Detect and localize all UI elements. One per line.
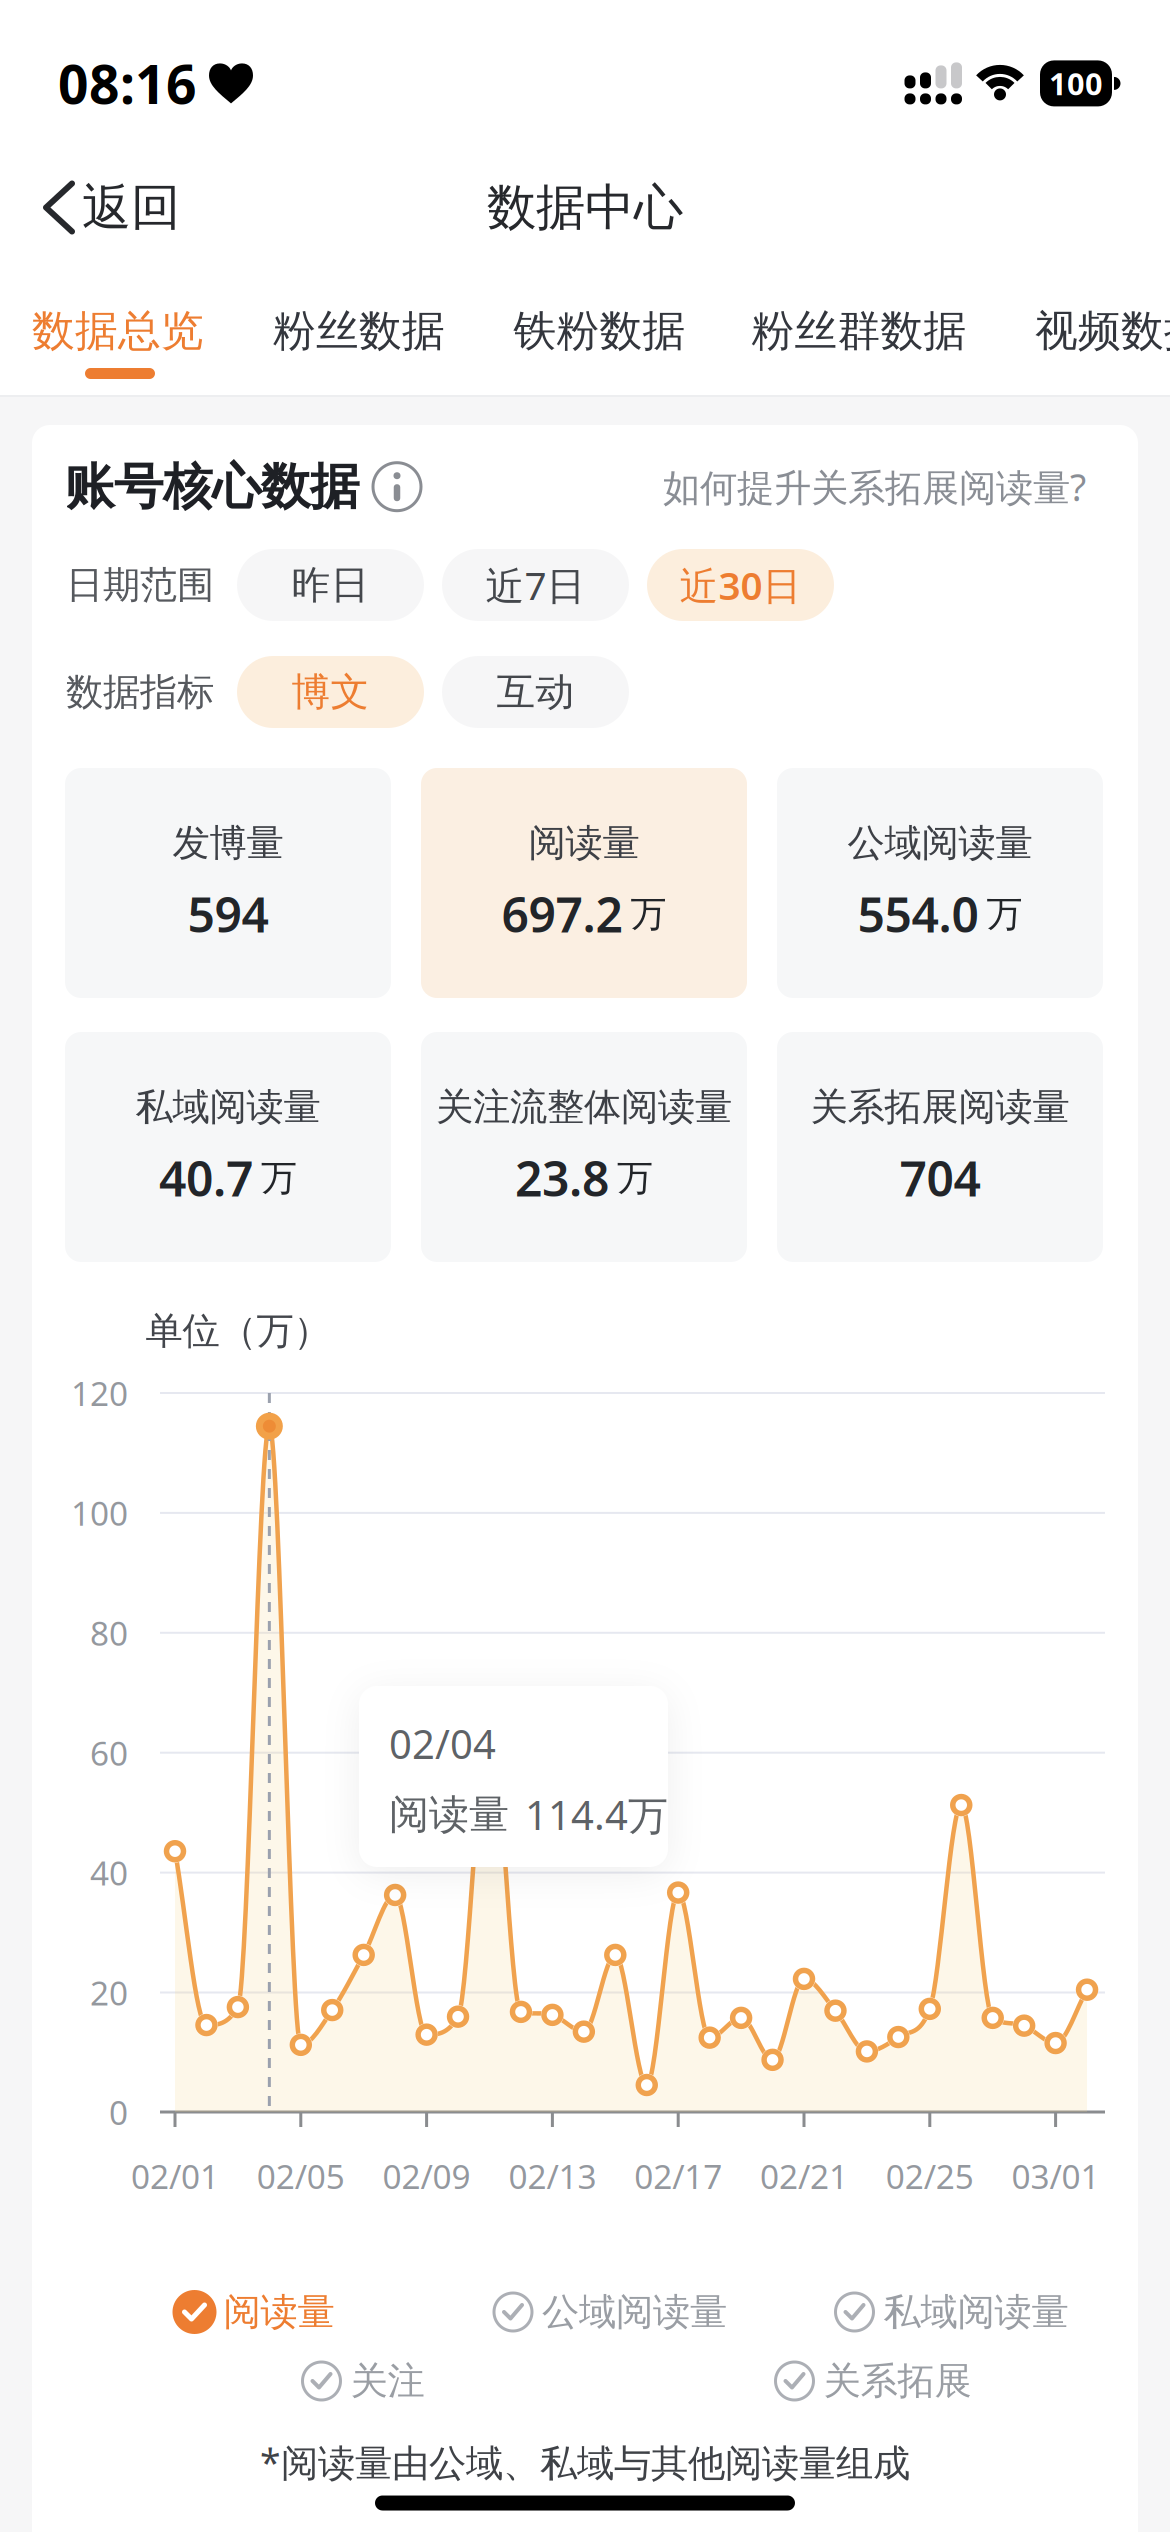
button[interactable]: 近7日 — [442, 549, 629, 621]
button[interactable]: 阅读量 — [172, 2289, 334, 2335]
staticText: 博文 — [291, 668, 369, 716]
button[interactable]: 返回 — [42, 177, 180, 238]
staticText: 40 — [90, 1850, 128, 1895]
staticText: 114.4万 — [525, 1788, 668, 1841]
staticText: 昨日 — [291, 561, 369, 609]
staticText: 数据指标 — [66, 669, 214, 715]
staticText: 公域阅读量 — [542, 2289, 727, 2335]
staticText: 发博量 — [172, 820, 283, 866]
staticText: 数据中心 — [487, 177, 683, 238]
button[interactable]: 公域阅读量 — [777, 768, 1103, 998]
staticText: 0 — [109, 2090, 128, 2134]
staticText: 594 — [187, 882, 268, 946]
staticText: 万 — [617, 1156, 653, 1200]
staticText: 100 — [1049, 63, 1103, 104]
button[interactable]: 博文 — [237, 656, 424, 728]
button[interactable]: 如何提升关系拓展阅读量? — [663, 462, 1086, 511]
staticText: 近30日 — [679, 559, 801, 611]
button[interactable]: 私域阅读量 — [65, 1032, 391, 1262]
staticText: 02/21 — [760, 2154, 848, 2198]
staticText: 120 — [71, 1371, 128, 1415]
staticText: 万 — [630, 892, 666, 936]
button[interactable]: 关系拓展阅读量 — [777, 1032, 1103, 1262]
button[interactable]: 近30日 — [647, 549, 834, 621]
staticText: 万 — [261, 1156, 297, 1200]
button[interactable]: 关系拓展 — [772, 2358, 971, 2404]
staticText: 704 — [899, 1146, 980, 1210]
staticText: 日期范围 — [66, 562, 214, 608]
button[interactable]: 互动 — [442, 656, 629, 728]
staticText: 08:16 — [58, 48, 197, 119]
button[interactable]: 说明 — [371, 461, 423, 513]
staticText: 单位（万） — [145, 1308, 330, 1354]
staticText: 私域阅读量 — [135, 1084, 320, 1130]
staticText: 返回 — [82, 177, 180, 238]
staticText: 03/01 — [1012, 2154, 1100, 2198]
staticText: 02/05 — [257, 2154, 345, 2198]
staticText: 互动 — [496, 668, 574, 716]
staticText: 账号核心数据 — [65, 456, 359, 517]
staticText: 如何提升关系拓展阅读量? — [663, 462, 1086, 511]
staticText: 阅读量 — [389, 1790, 509, 1839]
staticText: 数据总览 — [32, 305, 204, 357]
staticText: 60 — [90, 1731, 128, 1775]
staticText: 铁粉数据 — [513, 305, 685, 357]
staticText: 100 — [71, 1491, 128, 1535]
staticText: 02/13 — [508, 2154, 596, 2198]
staticText: 02/25 — [886, 2154, 974, 2198]
button[interactable]: 阅读量 — [421, 768, 747, 998]
button[interactable]: 视频数据 — [1035, 305, 1170, 357]
staticText: 23.8 — [515, 1146, 609, 1210]
staticText: 关注 — [350, 2358, 424, 2404]
staticText: 阅读量 — [223, 2289, 334, 2335]
staticText: 粉丝数据 — [273, 305, 445, 357]
staticText: 80 — [90, 1611, 128, 1655]
staticText: 40.7 — [159, 1146, 253, 1210]
staticText: 公域阅读量 — [847, 820, 1032, 866]
staticText: 阅读量 — [528, 820, 639, 866]
staticText: 粉丝群数据 — [751, 305, 966, 357]
staticText: 万 — [986, 892, 1022, 936]
button[interactable]: 私域阅读量 — [832, 2289, 1068, 2335]
button[interactable]: 铁粉数据 — [513, 305, 685, 357]
staticText: 20 — [90, 1970, 128, 2015]
staticText: 02/09 — [383, 2154, 471, 2198]
button[interactable]: 公域阅读量 — [491, 2289, 727, 2335]
staticText: 554.0 — [857, 882, 978, 946]
staticText: 02/04 — [389, 1717, 496, 1770]
button[interactable]: 关注 — [299, 2358, 424, 2404]
staticText: 关注流整体阅读量 — [436, 1084, 732, 1130]
staticText: 近7日 — [485, 559, 585, 611]
staticText: 02/01 — [131, 2154, 219, 2198]
button[interactable]: 关注流整体阅读量 — [421, 1032, 747, 1262]
staticText: 私域阅读量 — [883, 2289, 1068, 2335]
button[interactable]: 数据总览 — [32, 305, 204, 357]
staticText: 02/17 — [634, 2154, 722, 2198]
staticText: 关系拓展 — [823, 2358, 971, 2404]
button[interactable]: 昨日 — [237, 549, 424, 621]
button[interactable]: 粉丝数据 — [273, 305, 445, 357]
staticText: *阅读量由公域、私域与其他阅读量组成 — [260, 2437, 910, 2487]
staticText: 关系拓展阅读量 — [810, 1084, 1069, 1130]
staticText: 697.2 — [501, 882, 622, 946]
button[interactable]: 发博量 — [65, 768, 391, 998]
button[interactable]: 粉丝群数据 — [751, 305, 966, 357]
staticText: 视频数据 — [1035, 305, 1170, 357]
